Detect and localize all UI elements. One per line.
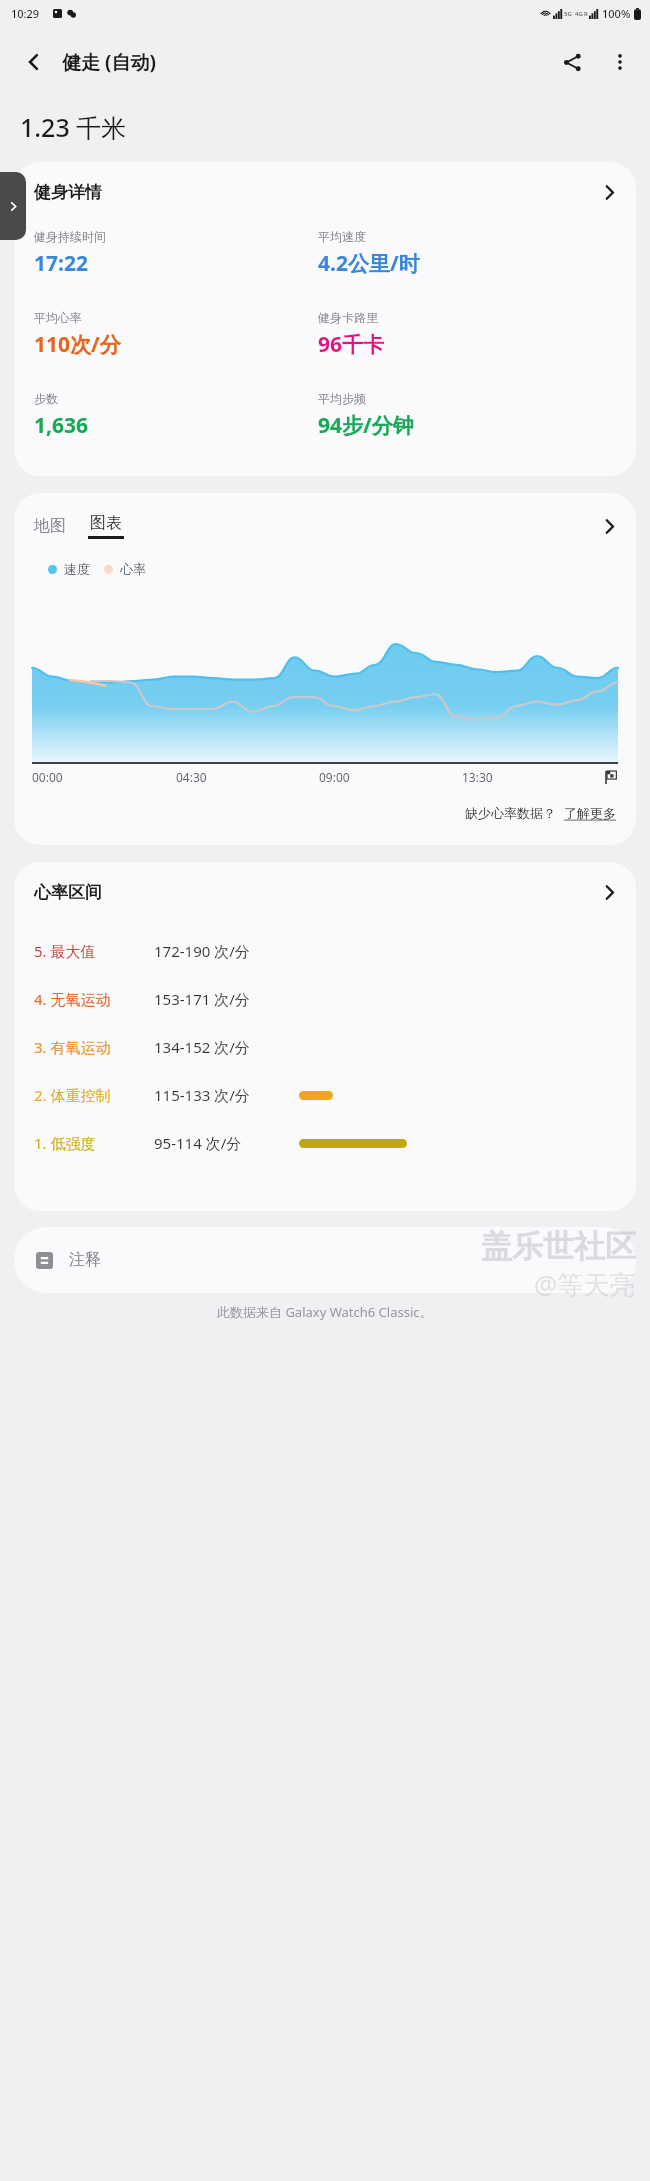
button[interactable]: 5. 最大值	[14, 927, 636, 975]
staticText: 2. 体重控制	[34, 1085, 111, 1105]
button[interactable]: More options	[596, 38, 644, 86]
button[interactable]: 注释	[14, 1227, 636, 1293]
staticText: 1,636	[34, 411, 89, 440]
button[interactable]: 3. 有氧运动	[14, 1023, 636, 1071]
staticText: 172-190 次/分	[154, 941, 250, 961]
staticText: 09:00	[319, 769, 350, 785]
button[interactable]: Back	[12, 40, 56, 84]
button[interactable]: 地图	[14, 493, 636, 543]
staticText: 110次/分	[34, 330, 121, 359]
staticText: 缺少心率数据？	[465, 805, 556, 821]
button[interactable]: 缺少心率数据？	[465, 805, 636, 821]
staticText: 平均步频	[318, 391, 366, 406]
staticText: 平均心率	[34, 310, 82, 325]
staticText: 健身持续时间	[34, 229, 106, 244]
staticText: 此数据来自 Galaxy Watch6 Classic。	[217, 1303, 433, 1321]
staticText: 95-114 次/分	[154, 1133, 242, 1153]
staticText: 134-152 次/分	[154, 1037, 250, 1057]
button[interactable]: 心率区间	[14, 862, 636, 909]
button[interactable]: 健身详情	[14, 162, 636, 209]
staticText: 1. 低强度	[34, 1133, 96, 1153]
staticText: 心率区间	[34, 882, 102, 903]
staticText: 平均速度	[318, 229, 366, 244]
staticText: 1.23 千米	[20, 110, 127, 144]
staticText: 17:22	[34, 249, 88, 278]
button[interactable]: 1. 低强度	[14, 1119, 636, 1167]
staticText: 健身卡路里	[318, 310, 378, 325]
button[interactable]: 4. 无氧运动	[14, 975, 636, 1023]
staticText: 了解更多	[564, 805, 616, 821]
staticText: 10:29	[11, 6, 40, 21]
staticText: 4. 无氧运动	[34, 989, 111, 1009]
staticText: 00:00	[32, 769, 63, 785]
button[interactable]: 2. 体重控制	[14, 1071, 636, 1119]
button[interactable]: Expand panel	[0, 172, 26, 240]
staticText: 3. 有氧运动	[34, 1037, 111, 1057]
staticText: 地图	[34, 516, 66, 536]
staticText: 健走 (自动)	[62, 49, 156, 75]
staticText: 04:30	[176, 769, 207, 785]
staticText: 153-171 次/分	[154, 989, 250, 1009]
staticText: 5G	[564, 10, 572, 18]
staticText: 速度	[64, 561, 90, 577]
staticText: 5. 最大值	[34, 941, 96, 961]
staticText: 盖乐世社区	[481, 1227, 636, 1266]
staticText: 图表	[90, 513, 122, 533]
staticText: 96千卡	[318, 330, 385, 359]
button[interactable]: Share	[548, 38, 596, 86]
staticText: 4.2公里/时	[318, 249, 420, 278]
staticText: 健身详情	[34, 182, 102, 203]
staticText: 13:30	[462, 769, 493, 785]
staticText: 步数	[34, 391, 58, 406]
staticText: R	[584, 10, 588, 18]
staticText: 100%	[602, 6, 631, 21]
staticText: @等天亮	[534, 1266, 636, 1302]
staticText: 94步/分钟	[318, 411, 414, 440]
staticText: 注释	[69, 1250, 101, 1270]
staticText: 心率	[120, 561, 146, 577]
staticText: 115-133 次/分	[154, 1085, 250, 1105]
staticText: 4G	[575, 10, 583, 18]
